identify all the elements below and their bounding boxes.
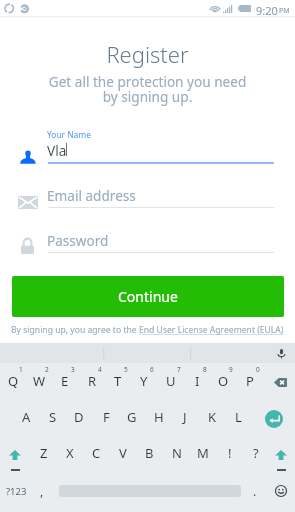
button[interactable]: V	[109, 436, 136, 470]
staticText: Y	[140, 372, 148, 390]
button[interactable]: K	[199, 400, 225, 434]
button[interactable]: I	[184, 364, 210, 398]
button[interactable]: G	[119, 400, 145, 434]
staticText: Z	[40, 444, 48, 462]
staticText: Email address	[47, 186, 136, 205]
staticText: 9:20	[256, 3, 278, 18]
staticText: C	[92, 444, 101, 462]
staticText: X	[66, 444, 74, 462]
button[interactable]: Z	[30, 436, 57, 470]
staticText: .	[253, 483, 257, 499]
button[interactable]: Shift	[2, 441, 28, 473]
staticText: T	[114, 372, 122, 390]
staticText: Vla	[47, 141, 67, 160]
staticText: Continue	[118, 287, 178, 306]
staticText: 0	[256, 365, 260, 374]
button[interactable]: R	[79, 364, 105, 398]
staticText: P	[246, 372, 254, 390]
staticText: L	[235, 408, 242, 426]
staticText: 6	[150, 365, 154, 374]
staticText: R	[88, 372, 97, 390]
staticText: 1	[19, 365, 23, 374]
staticText: ?	[253, 444, 259, 462]
button[interactable]: O	[210, 364, 236, 398]
staticText: By signing up, you agree to the	[11, 324, 139, 336]
button[interactable]: Voice input	[271, 343, 291, 363]
staticText: O	[218, 372, 229, 390]
staticText: PM	[279, 6, 290, 16]
button[interactable]: N	[163, 436, 190, 470]
staticText: Register	[0, 39, 295, 69]
button[interactable]: P	[237, 364, 263, 398]
staticText: N	[172, 444, 182, 462]
button[interactable]: Enter	[265, 410, 283, 428]
button[interactable]: !	[216, 436, 243, 470]
button[interactable]: Backspace	[268, 371, 292, 393]
staticText: K	[208, 408, 217, 426]
staticText: B	[145, 444, 154, 462]
button[interactable]: S	[40, 400, 66, 434]
staticText: J	[183, 408, 187, 426]
button[interactable]: X	[56, 436, 83, 470]
staticText: D	[74, 408, 84, 426]
staticText: M	[197, 444, 209, 462]
button[interactable]: E	[52, 364, 78, 398]
button[interactable]: M	[189, 436, 216, 470]
staticText: S	[49, 408, 57, 426]
button[interactable]: T	[105, 364, 131, 398]
staticText: ,	[40, 483, 44, 499]
button[interactable]: Y	[131, 364, 157, 398]
button[interactable]: C	[83, 436, 110, 470]
staticText: W	[33, 372, 46, 390]
staticText: ?123	[6, 485, 27, 498]
staticText: G	[127, 408, 137, 426]
button[interactable]: Email address	[0, 173, 295, 209]
button[interactable]: J	[172, 400, 198, 434]
staticText: !	[228, 444, 232, 462]
staticText: Get all the protection you need by signi…	[0, 72, 295, 106]
staticText: 4	[98, 365, 102, 374]
button[interactable]: Continue	[12, 276, 284, 317]
staticText: A	[22, 408, 31, 426]
button[interactable]: U	[158, 364, 184, 398]
button[interactable]: End User License Agreement (EULA)	[139, 324, 284, 336]
button[interactable]: Shift	[268, 441, 294, 473]
button[interactable]: Q	[0, 364, 26, 398]
staticText: F	[103, 408, 110, 426]
button[interactable]: W	[26, 364, 52, 398]
staticText: 7	[177, 365, 181, 374]
button[interactable]: A	[13, 400, 39, 434]
staticText: Your Name	[47, 129, 91, 140]
button[interactable]: ,	[34, 479, 50, 503]
staticText: H	[154, 408, 164, 426]
button[interactable]: L	[225, 400, 251, 434]
staticText: E	[61, 372, 69, 390]
button[interactable]: F	[93, 400, 119, 434]
staticText: 9	[229, 365, 233, 374]
button[interactable]: D	[66, 400, 92, 434]
button[interactable]: Your Name	[0, 128, 295, 164]
button[interactable]: H	[146, 400, 172, 434]
button[interactable]: .	[247, 479, 263, 503]
staticText: V	[119, 444, 127, 462]
staticText: Q	[8, 372, 19, 390]
staticText: 8	[203, 365, 207, 374]
button[interactable]: Password	[0, 218, 295, 254]
staticText: I	[195, 372, 200, 390]
staticText: 2	[45, 365, 49, 374]
staticText: U	[166, 372, 176, 390]
button[interactable]: B	[136, 436, 163, 470]
staticText: Password	[47, 231, 109, 250]
staticText: 3	[71, 365, 75, 374]
button[interactable]: Emoji	[271, 479, 291, 503]
staticText: 5	[124, 365, 128, 374]
button[interactable]: ?123	[0, 479, 32, 503]
button[interactable]: ?	[242, 436, 269, 470]
